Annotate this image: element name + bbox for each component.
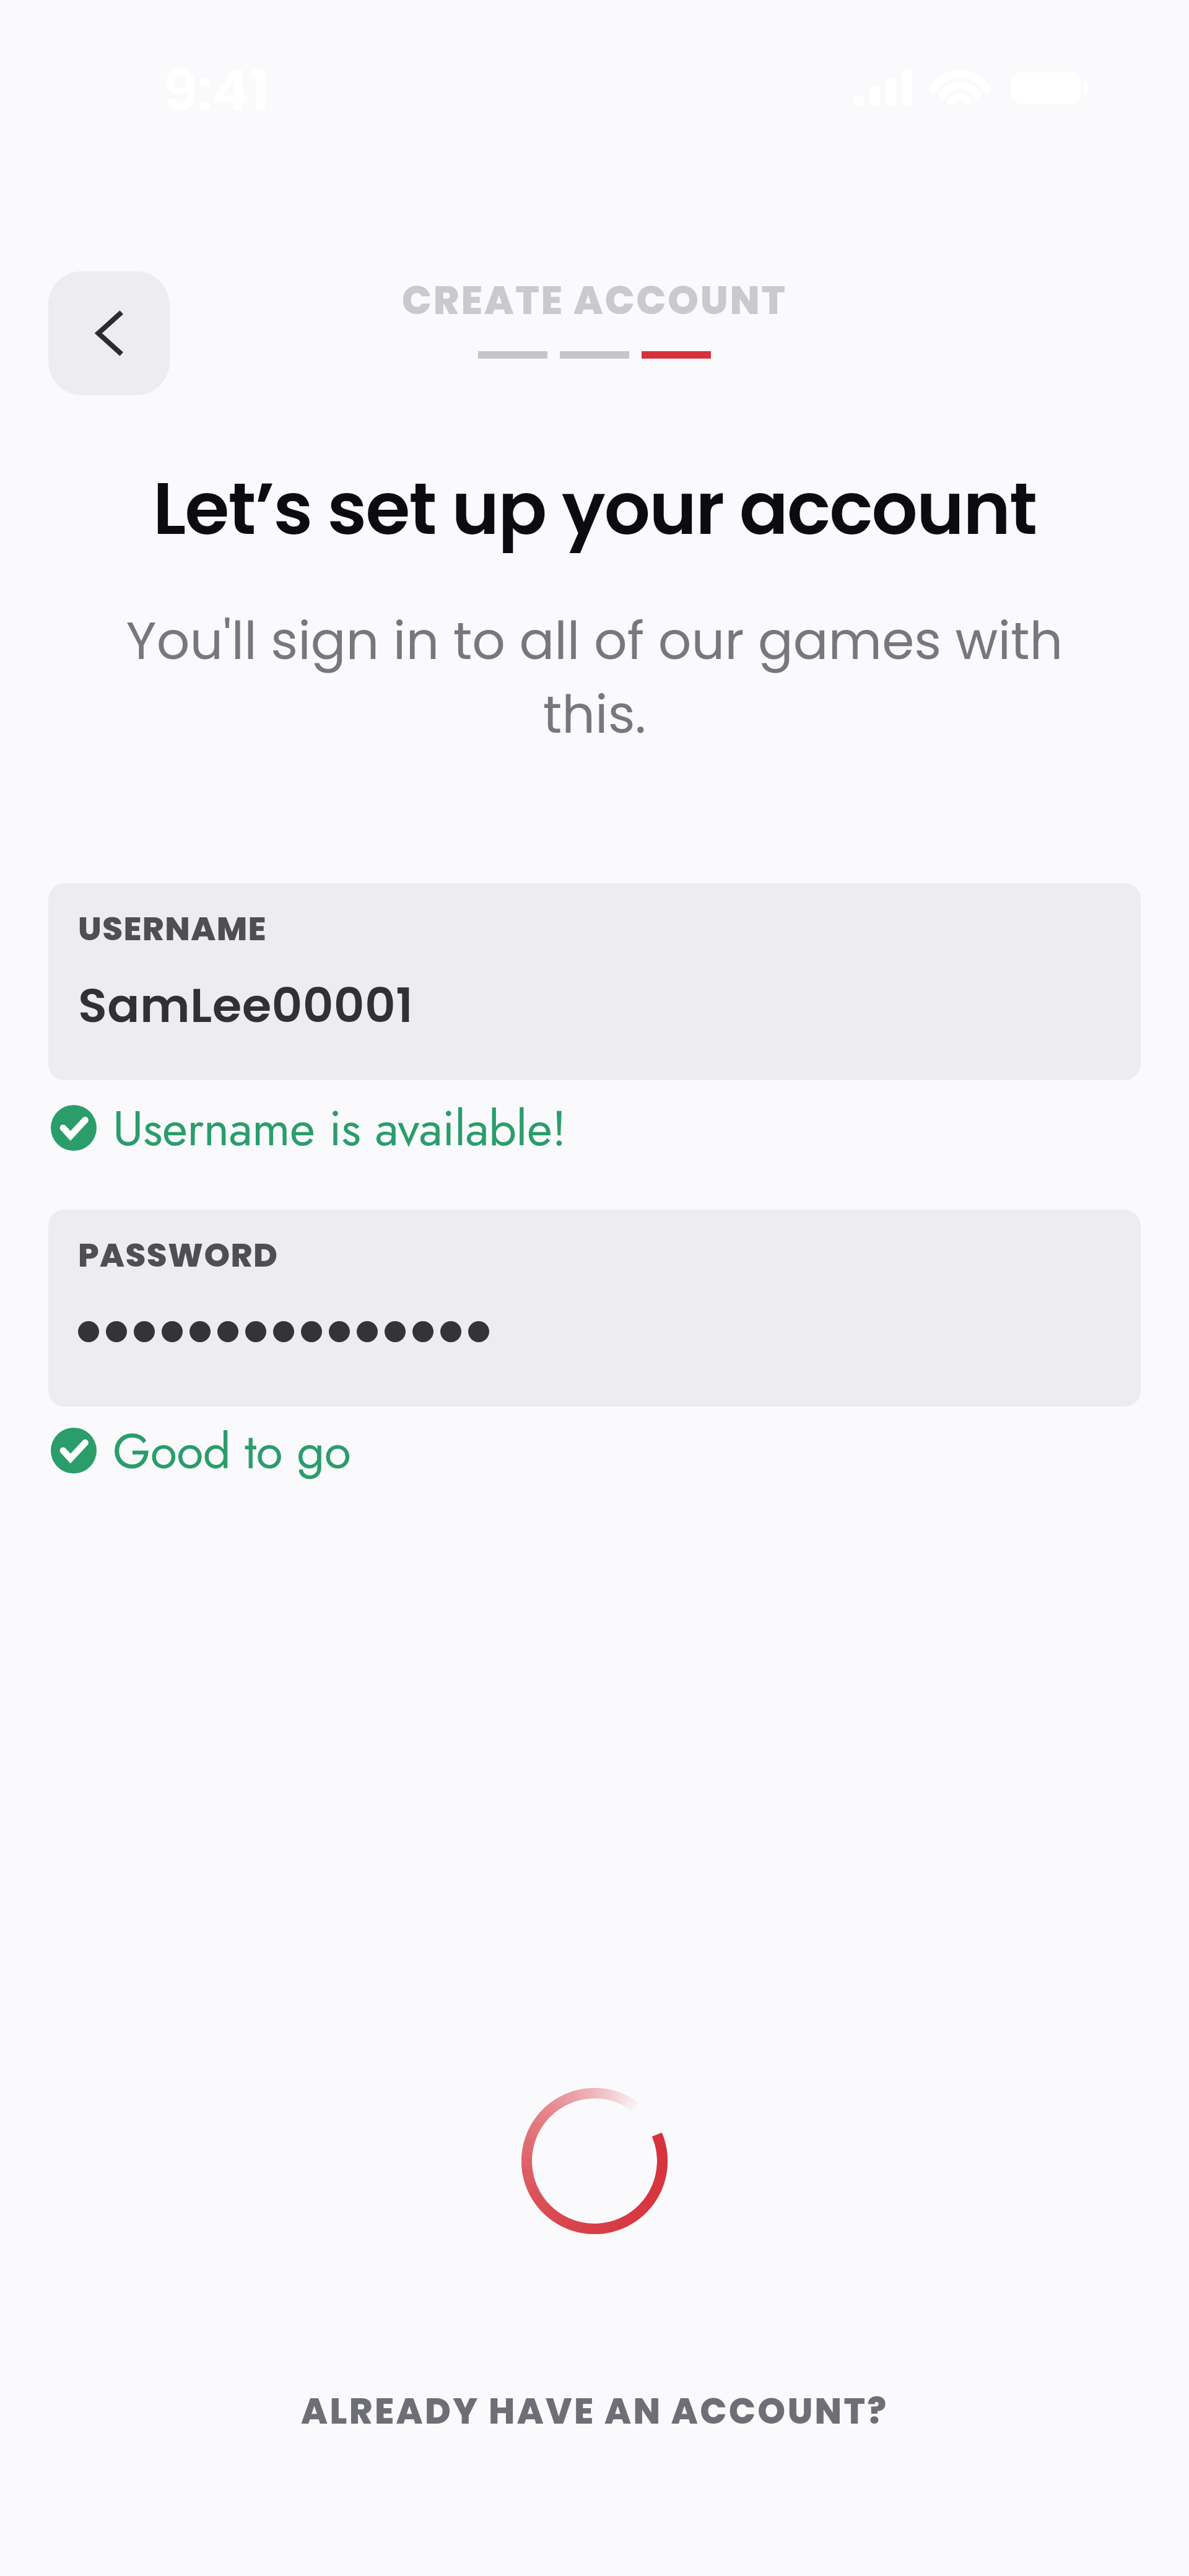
button[interactable]: Back xyxy=(48,271,170,395)
staticText: CREATE ACCOUNT xyxy=(402,273,787,328)
staticText: You'll sign in to all of our games with … xyxy=(93,605,1096,751)
staticText: Let’s set up your account xyxy=(0,458,1189,559)
staticText: USERNAME xyxy=(78,906,268,951)
button[interactable]: PASSWORD xyxy=(48,1210,1141,1407)
button[interactable]: USERNAME xyxy=(48,883,1141,1080)
staticText: Username is available! xyxy=(113,1093,567,1163)
staticText: ALREADY HAVE AN ACCOUNT? xyxy=(301,2386,889,2436)
staticText: PASSWORD xyxy=(78,1232,279,1278)
staticText: SamLee00001 xyxy=(78,972,414,1039)
button[interactable]: ALREADY HAVE AN ACCOUNT? xyxy=(0,2373,1189,2450)
staticText: Good to go xyxy=(113,1415,351,1486)
